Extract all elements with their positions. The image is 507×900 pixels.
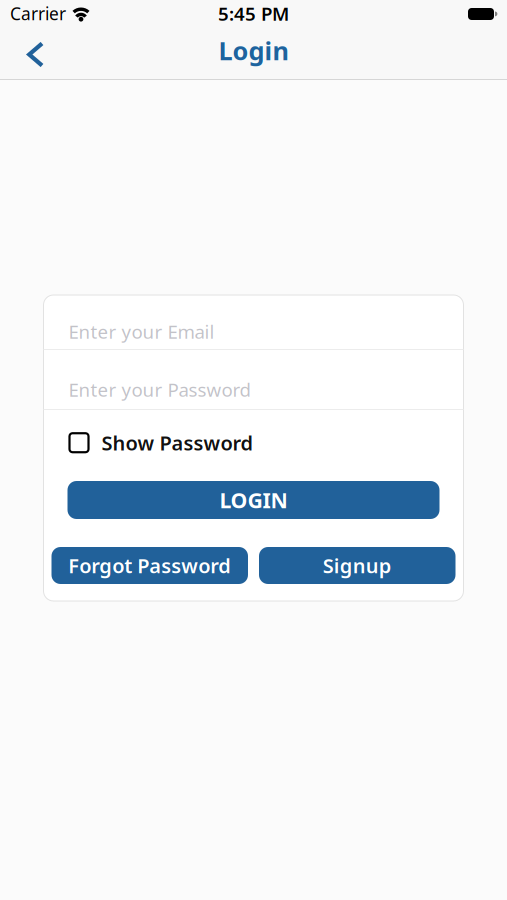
staticText: Forgot Password bbox=[68, 552, 231, 579]
button[interactable]: LOGIN bbox=[43, 481, 463, 519]
staticText: Enter your Password bbox=[68, 377, 250, 402]
button[interactable]: Signup bbox=[259, 547, 455, 584]
button[interactable]: Back bbox=[0, 29, 44, 79]
button[interactable]: Forgot Password bbox=[51, 547, 248, 584]
staticText: Show Password bbox=[101, 429, 253, 456]
button[interactable]: Show Password bbox=[43, 429, 253, 456]
staticText: Enter your Email bbox=[68, 319, 214, 344]
staticText: 5:45 PM bbox=[218, 1, 289, 26]
staticText: Signup bbox=[323, 552, 392, 579]
staticText: LOGIN bbox=[219, 486, 287, 514]
staticText: Carrier bbox=[10, 2, 66, 25]
staticText: Login bbox=[218, 34, 288, 67]
